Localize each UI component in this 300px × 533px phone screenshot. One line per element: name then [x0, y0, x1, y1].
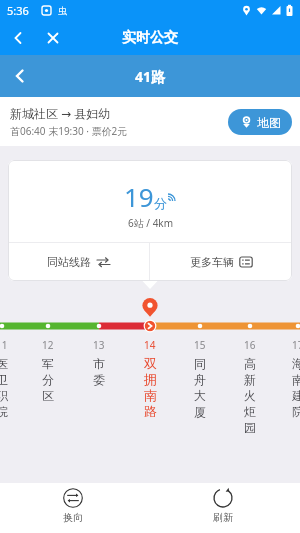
staticText: 南 — [292, 372, 300, 387]
staticText: 建 — [292, 388, 300, 403]
button[interactable]: 地图 — [228, 109, 292, 135]
button[interactable] — [0, 55, 40, 97]
button[interactable]: 更多车辆 — [150, 243, 292, 281]
staticText: 16 — [244, 338, 256, 352]
staticText: 区 — [42, 388, 54, 403]
staticText: 5:36 — [7, 3, 29, 18]
staticText: 火 — [244, 388, 256, 403]
staticText: 委 — [93, 372, 105, 387]
staticText: 炬 — [244, 404, 256, 419]
staticText: 院 — [292, 404, 300, 419]
button[interactable]: 刷新 — [198, 487, 248, 524]
staticText: 刷新 — [213, 511, 233, 524]
staticText: 职 — [0, 388, 8, 403]
staticText: 11 — [0, 338, 8, 352]
staticText: 分 — [154, 195, 167, 211]
staticText: 路 — [144, 403, 157, 419]
staticText: 首06:40 末19:30 · 票价2元 — [10, 124, 128, 138]
staticText: 园 — [244, 420, 256, 435]
staticText: 15 — [194, 338, 206, 352]
staticText: 分 — [42, 372, 54, 387]
staticText: 海 — [292, 356, 300, 371]
staticText: 同站线路 — [47, 255, 91, 269]
button[interactable]: 同站线路 — [8, 243, 149, 281]
staticText: 双 — [144, 355, 157, 371]
staticText: 实时公交 — [122, 29, 178, 47]
staticText: 13 — [93, 338, 105, 352]
button[interactable] — [36, 20, 70, 55]
staticText: 同 — [194, 356, 206, 371]
staticText: 厦 — [194, 404, 206, 419]
staticText: 6站 / 4km — [128, 216, 174, 230]
staticText: 大 — [194, 388, 206, 403]
staticText: 19 — [124, 179, 154, 214]
staticText: 17 — [292, 338, 300, 352]
staticText: 新 — [244, 372, 256, 387]
staticText: 换向 — [63, 511, 83, 524]
staticText: 高 — [244, 356, 256, 371]
staticText: 更多车辆 — [190, 255, 234, 269]
staticText: 拥 — [144, 371, 157, 387]
staticText: 41路 — [135, 67, 166, 86]
staticText: 舟 — [194, 372, 206, 387]
staticText: 虫 — [58, 5, 67, 16]
staticText: 14 — [144, 338, 156, 352]
button[interactable]: 换向 — [48, 487, 98, 524]
staticText: 院 — [0, 404, 8, 419]
staticText: 12 — [42, 338, 54, 352]
staticText: 市 — [93, 356, 105, 371]
staticText: 卫 — [0, 372, 8, 387]
staticText: 军 — [42, 356, 54, 371]
staticText: 地图 — [257, 115, 281, 130]
staticText: 医 — [0, 356, 8, 371]
staticText: 新城社区 → 县妇幼 — [10, 105, 111, 121]
staticText: 南 — [144, 387, 157, 403]
button[interactable] — [0, 20, 36, 55]
